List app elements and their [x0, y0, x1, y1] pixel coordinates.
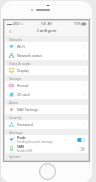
staticText: Network [9, 37, 23, 41]
staticText: Network status [17, 53, 42, 58]
staticText: Push [17, 135, 26, 140]
staticText: Display [17, 68, 29, 73]
button[interactable]: Wi-Fi [5, 42, 88, 51]
button[interactable]: SD card [5, 90, 88, 99]
button[interactable]: Record [5, 81, 88, 90]
staticText: Alarm [9, 100, 19, 104]
staticText: 9:41 AM [41, 22, 52, 26]
staticText: NAS Settings [17, 107, 39, 112]
staticText: Password [17, 122, 33, 127]
staticText: System [9, 154, 21, 159]
button[interactable]: Password [5, 120, 88, 129]
staticText: Message [9, 130, 23, 134]
staticText: Video & audio [9, 61, 31, 65]
staticText: 100% [74, 22, 81, 26]
button[interactable]: NAS Settings [5, 105, 88, 114]
button[interactable]: SMS [5, 144, 88, 153]
button[interactable]: Switch off [77, 147, 85, 151]
button[interactable]: Network status [5, 51, 88, 60]
staticText: Wi-Fi [17, 44, 26, 49]
staticText: Enable SMS [17, 149, 33, 153]
staticText: Configure [37, 28, 57, 34]
staticText: Storage [9, 76, 22, 80]
button[interactable]: Push [5, 135, 88, 144]
staticText: Security [9, 115, 22, 119]
button[interactable]: Back [7, 28, 13, 34]
staticText: Record [17, 83, 29, 88]
staticText: SD card [17, 92, 30, 97]
staticText: SMS [17, 144, 25, 149]
button[interactable]: Switch on [77, 138, 85, 142]
staticText: Sending the push message [17, 140, 53, 144]
staticText: AT&T [13, 22, 20, 26]
button[interactable]: Display [5, 66, 88, 75]
